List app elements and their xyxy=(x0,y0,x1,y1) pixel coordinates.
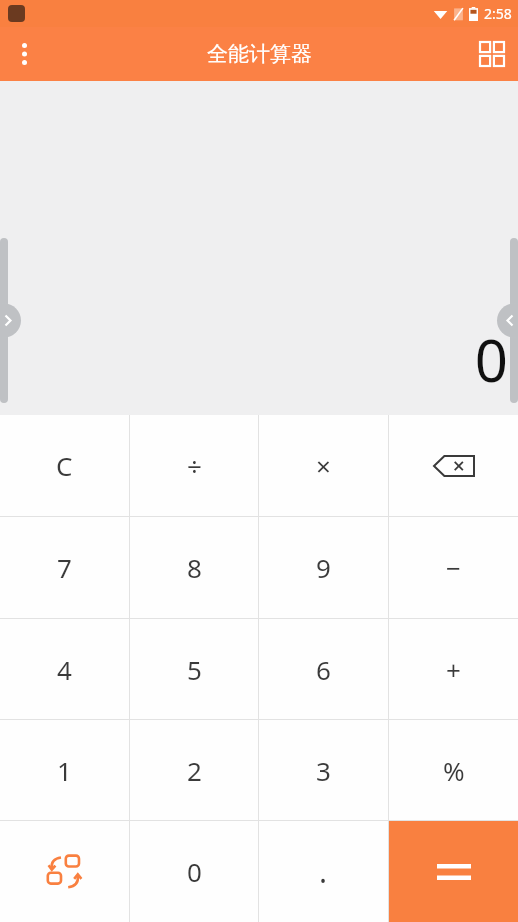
staticText: 2:58 xyxy=(484,4,512,23)
button[interactable]: ÷ xyxy=(130,415,258,516)
staticText: 5 xyxy=(187,652,202,687)
button[interactable]: 4 xyxy=(0,619,129,719)
button[interactable]: Grid view xyxy=(466,27,518,81)
button[interactable]: 3 xyxy=(259,720,388,820)
staticText: 全能计算器 xyxy=(207,41,312,67)
staticText: 2 xyxy=(187,753,202,788)
staticText: 8 xyxy=(187,550,202,585)
button[interactable] xyxy=(389,821,518,922)
button[interactable]: Open right panel xyxy=(492,238,518,403)
button[interactable]: × xyxy=(259,415,388,516)
staticText: 0 xyxy=(474,320,508,399)
button[interactable]: 0 xyxy=(130,821,258,922)
staticText: % xyxy=(443,753,465,788)
button[interactable]: Open left panel xyxy=(0,238,26,403)
staticText: × xyxy=(316,448,331,483)
button[interactable]: 9 xyxy=(259,517,388,618)
staticText: 1 xyxy=(57,753,72,788)
staticText: + xyxy=(446,652,461,687)
button[interactable]: 8 xyxy=(130,517,258,618)
staticText: . xyxy=(319,851,328,892)
staticText: 6 xyxy=(316,652,331,687)
button[interactable]: C xyxy=(0,415,129,516)
staticText: 3 xyxy=(316,753,331,788)
staticText: − xyxy=(446,550,461,585)
button[interactable]: Backspace xyxy=(389,415,518,516)
button[interactable]: Unit converter xyxy=(0,821,129,922)
button[interactable]: 5 xyxy=(130,619,258,719)
button[interactable]: + xyxy=(389,619,518,719)
staticText: 0 xyxy=(187,854,202,889)
button[interactable]: 6 xyxy=(259,619,388,719)
button[interactable]: 1 xyxy=(0,720,129,820)
button[interactable]: More options xyxy=(0,27,48,81)
staticText: 7 xyxy=(57,550,72,585)
button[interactable]: 2 xyxy=(130,720,258,820)
staticText: 4 xyxy=(57,652,72,687)
staticText: C xyxy=(56,448,73,483)
staticText: 9 xyxy=(316,550,331,585)
button[interactable]: % xyxy=(389,720,518,820)
button[interactable]: 7 xyxy=(0,517,129,618)
button[interactable]: . xyxy=(259,821,388,922)
staticText: ÷ xyxy=(187,448,202,483)
button[interactable]: − xyxy=(389,517,518,618)
